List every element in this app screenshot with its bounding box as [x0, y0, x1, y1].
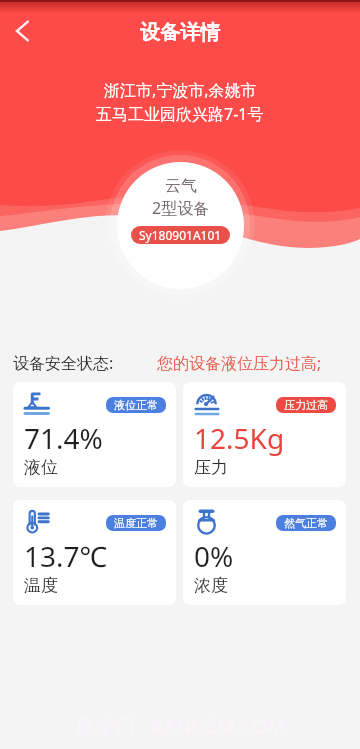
staticText: 浙江市,宁波市,余姚市	[104, 79, 257, 101]
button[interactable]: 压力过高	[183, 382, 346, 487]
button[interactable]: Back	[3, 11, 43, 51]
staticText: 温度正常	[114, 516, 158, 530]
button[interactable]: 温度正常	[13, 500, 176, 605]
staticText: 温度	[24, 575, 58, 596]
staticText: 0%	[194, 537, 234, 575]
staticText: 设备安全状态:	[13, 352, 114, 374]
button[interactable]: 液位正常	[13, 382, 176, 487]
staticText: 液位	[24, 457, 58, 478]
staticText: 设备详情	[140, 20, 220, 45]
staticText: 12.5Kg	[194, 419, 285, 457]
staticText: 2型设备	[152, 197, 210, 219]
staticText: 13.7℃	[24, 537, 108, 575]
staticText: 您的设备液位压力过高;	[157, 352, 322, 374]
staticText: 云气	[165, 176, 197, 196]
staticText: 71.4%	[24, 419, 103, 457]
staticText: 压力过高	[284, 398, 328, 412]
staticText: 五马工业园欣兴路7-1号	[96, 103, 264, 125]
button[interactable]: 然气正常	[183, 500, 346, 605]
staticText: 压力	[194, 457, 228, 478]
staticText: 然气正常	[284, 516, 328, 530]
staticText: 液位正常	[114, 398, 158, 412]
staticText: 浓度	[194, 575, 228, 596]
staticText: Sy180901A101	[139, 227, 222, 243]
